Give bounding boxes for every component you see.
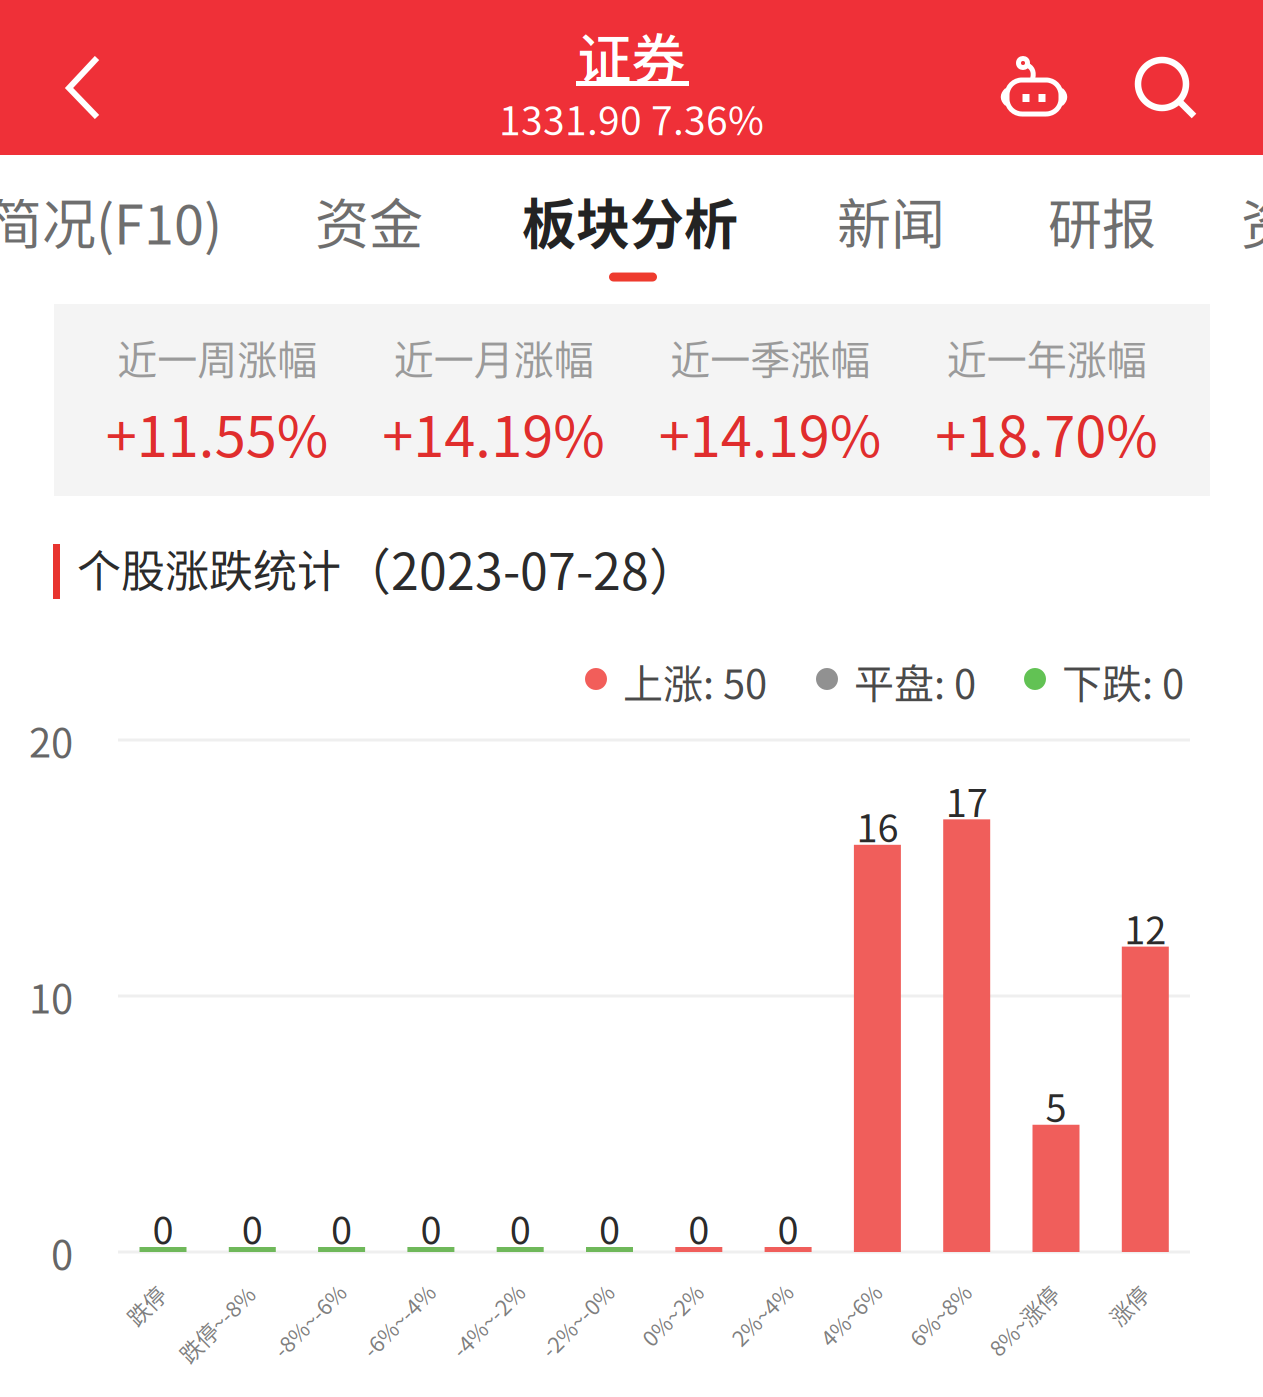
staticText: 上涨: 50 (623, 652, 767, 710)
staticText: 新闻 (837, 182, 945, 260)
staticText: 17 (946, 773, 988, 828)
staticText: 16 (856, 798, 898, 853)
button[interactable]: 新闻 (0, 155, 1263, 292)
staticText: +14.19% (659, 392, 882, 473)
staticText: 0 (688, 1200, 709, 1255)
staticText: 涨停 (1106, 1289, 1150, 1321)
staticText: 8%~涨停 (979, 1304, 1067, 1336)
staticText: 6%~8% (902, 1299, 978, 1331)
staticText: 2%~4% (724, 1298, 800, 1330)
staticText: 近一年涨幅 (947, 328, 1147, 386)
staticText: 0 (599, 1200, 620, 1255)
button[interactable]: 资 (0, 155, 1263, 292)
staticText: 下跌: 0 (1062, 652, 1184, 710)
staticText: +18.70% (935, 392, 1158, 473)
staticText: 0 (420, 1200, 441, 1255)
staticText: 资 (1241, 182, 1263, 260)
staticText: 0 (242, 1200, 263, 1255)
staticText: +11.55% (106, 392, 329, 473)
staticText: 4%~6% (813, 1299, 889, 1331)
staticText: 20 (29, 711, 73, 769)
staticText: 个股涨跌统计 (77, 536, 341, 600)
staticText: 跌停~-8% (169, 1308, 265, 1340)
button[interactable]: 研报 (0, 155, 1263, 292)
staticText: 10 (29, 967, 73, 1025)
button[interactable]: 板块分析 (0, 155, 1263, 292)
button[interactable]: 资金 (0, 155, 1263, 292)
staticText: 1331.90 7.36% (499, 90, 764, 146)
staticText: -4%~-2% (442, 1304, 534, 1336)
staticText: 近一周涨幅 (117, 328, 317, 386)
staticText: 5 (1045, 1078, 1066, 1133)
staticText: 0 (510, 1200, 531, 1255)
staticText: 0%~2% (634, 1299, 710, 1331)
staticText: （2023-07-28） (341, 532, 699, 604)
staticText: +14.19% (382, 392, 605, 473)
staticText: 0 (331, 1200, 352, 1255)
staticText: 板块分析 (522, 182, 738, 260)
staticText: -8%~-6% (263, 1304, 355, 1336)
staticText: 0 (51, 1223, 73, 1281)
staticText: 0 (778, 1200, 799, 1255)
button[interactable]: 简况(F10) (0, 155, 1263, 292)
staticText: 12 (1124, 900, 1166, 955)
button[interactable]: AI assistant (964, 0, 1104, 155)
staticText: 近一月涨幅 (394, 328, 594, 386)
staticText: 平盘: 0 (854, 652, 976, 710)
staticText: -2%~-0% (531, 1304, 623, 1336)
staticText: 证券 (577, 17, 685, 95)
staticText: -6%~-4% (352, 1304, 444, 1336)
staticText: 简况(F10) (0, 182, 222, 260)
staticText: 近一季涨幅 (670, 328, 870, 386)
button[interactable]: Back (0, 0, 164, 155)
staticText: 资金 (315, 182, 423, 260)
staticText: 跌停 (124, 1289, 168, 1321)
staticText: 0 (152, 1200, 173, 1255)
button[interactable]: Search (1100, 0, 1263, 155)
staticText: 研报 (1048, 182, 1156, 260)
